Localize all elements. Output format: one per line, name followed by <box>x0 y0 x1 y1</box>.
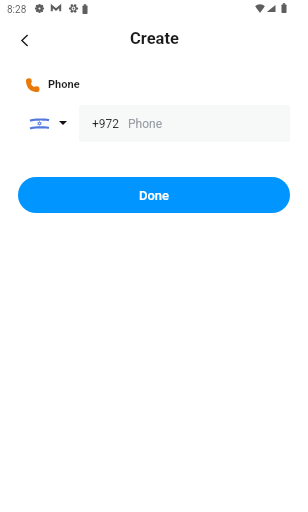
staticText: Create <box>130 29 179 48</box>
button[interactable]: Done <box>18 177 290 213</box>
staticText: Phone <box>128 117 163 131</box>
button[interactable]: Select country code <box>22 105 74 141</box>
staticText: 8:28 <box>7 4 27 16</box>
button[interactable]: +972 <box>79 105 290 142</box>
staticText: +972 <box>92 117 120 131</box>
staticText: Phone <box>48 78 80 91</box>
staticText: Done <box>139 188 170 203</box>
button[interactable]: Back <box>8 24 40 56</box>
